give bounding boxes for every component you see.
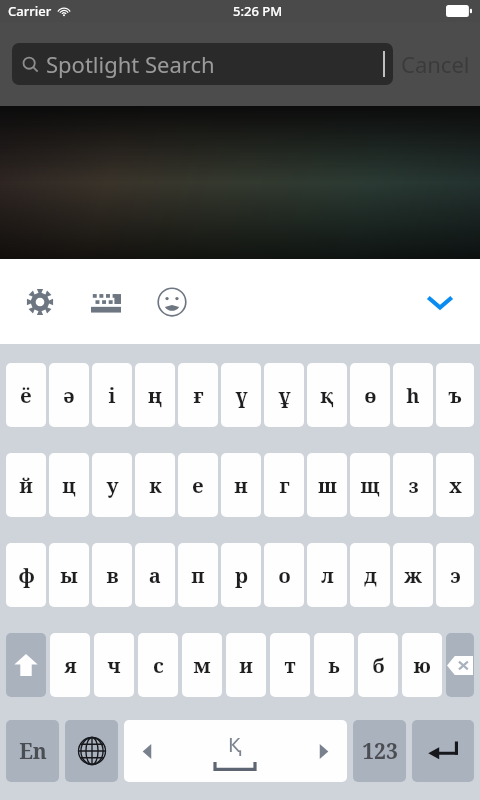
- button[interactable]: ч: [94, 633, 134, 697]
- button[interactable]: л: [307, 543, 347, 607]
- staticText: у: [106, 472, 119, 499]
- staticText: б: [372, 652, 385, 679]
- staticText: д: [364, 562, 377, 589]
- staticText: к: [149, 472, 162, 499]
- button[interactable]: й: [6, 453, 46, 517]
- staticText: х: [449, 472, 462, 499]
- button[interactable]: я: [50, 633, 90, 697]
- staticText: ғ: [193, 382, 204, 409]
- staticText: һ: [406, 382, 420, 409]
- button[interactable]: п: [178, 543, 218, 607]
- button[interactable]: г: [264, 453, 304, 517]
- button[interactable]: с: [138, 633, 178, 697]
- staticText: ч: [107, 652, 121, 679]
- button[interactable]: Space: [124, 720, 347, 782]
- button[interactable]: р: [221, 543, 261, 607]
- button[interactable]: ө: [350, 363, 390, 427]
- button[interactable]: э: [436, 543, 474, 607]
- staticText: ъ: [448, 382, 462, 409]
- button[interactable]: Emoji: [150, 280, 194, 324]
- staticText: и: [239, 652, 253, 679]
- button[interactable]: ү: [221, 363, 261, 427]
- button[interactable]: в: [92, 543, 132, 607]
- button[interactable]: т: [270, 633, 310, 697]
- button[interactable]: Cancel: [401, 49, 470, 79]
- staticText: я: [64, 652, 77, 679]
- staticText: ү: [235, 382, 248, 409]
- button[interactable]: Change language: [65, 720, 118, 782]
- staticText: 5:26 PM: [233, 2, 283, 20]
- button[interactable]: б: [358, 633, 398, 697]
- staticText: н: [234, 472, 248, 499]
- button[interactable]: Hide keyboard: [418, 280, 462, 324]
- staticText: р: [235, 562, 248, 589]
- button[interactable]: қ: [307, 363, 347, 427]
- staticText: ф: [18, 562, 35, 589]
- button[interactable]: 123: [353, 720, 406, 782]
- button[interactable]: ғ: [178, 363, 218, 427]
- button[interactable]: х: [436, 453, 474, 517]
- button[interactable]: к: [135, 453, 175, 517]
- button[interactable]: н: [221, 453, 261, 517]
- staticText: қ: [320, 382, 334, 409]
- staticText: Cancel: [401, 49, 470, 79]
- staticText: ь: [328, 652, 340, 679]
- button[interactable]: о: [264, 543, 304, 607]
- staticText: ұ: [278, 382, 291, 409]
- button[interactable]: ң: [135, 363, 175, 427]
- staticText: й: [19, 472, 33, 499]
- staticText: п: [191, 562, 205, 589]
- button[interactable]: щ: [350, 453, 390, 517]
- staticText: і: [108, 382, 116, 409]
- staticText: ы: [60, 562, 78, 589]
- staticText: ё: [20, 382, 32, 409]
- button[interactable]: ь: [314, 633, 354, 697]
- button[interactable]: ы: [49, 543, 89, 607]
- staticText: э: [450, 562, 461, 589]
- button[interactable]: ъ: [436, 363, 474, 427]
- button[interactable]: Keyboard layout: [84, 280, 128, 324]
- button[interactable]: і: [92, 363, 132, 427]
- staticText: щ: [360, 472, 380, 499]
- staticText: En: [19, 737, 47, 766]
- staticText: т: [284, 652, 296, 679]
- staticText: ң: [148, 382, 162, 409]
- button[interactable]: ш: [307, 453, 347, 517]
- button[interactable]: Settings: [18, 280, 62, 324]
- button[interactable]: м: [182, 633, 222, 697]
- button[interactable]: Return: [412, 720, 474, 782]
- button[interactable]: ю: [402, 633, 442, 697]
- staticText: ө: [364, 382, 377, 409]
- button[interactable]: ц: [49, 453, 89, 517]
- button[interactable]: ф: [6, 543, 46, 607]
- button[interactable]: д: [350, 543, 390, 607]
- staticText: ш: [318, 472, 337, 499]
- button[interactable]: у: [92, 453, 132, 517]
- staticText: о: [278, 562, 291, 589]
- button[interactable]: Spotlight Search: [12, 43, 393, 85]
- staticText: Carrier: [8, 2, 52, 20]
- button[interactable]: һ: [393, 363, 433, 427]
- button[interactable]: е: [178, 453, 218, 517]
- button[interactable]: En: [6, 720, 59, 782]
- staticText: с: [153, 652, 164, 679]
- staticText: м: [193, 652, 211, 679]
- button[interactable]: и: [226, 633, 266, 697]
- staticText: 123: [362, 737, 398, 766]
- staticText: а: [149, 562, 161, 589]
- button[interactable]: з: [393, 453, 433, 517]
- staticText: з: [408, 472, 419, 499]
- button[interactable]: ә: [49, 363, 89, 427]
- staticText: л: [321, 562, 334, 589]
- staticText: Қ: [228, 731, 242, 758]
- staticText: ю: [413, 652, 431, 679]
- button[interactable]: ұ: [264, 363, 304, 427]
- button[interactable]: Backspace: [446, 633, 474, 697]
- staticText: ж: [404, 562, 422, 589]
- button[interactable]: а: [135, 543, 175, 607]
- staticText: г: [279, 472, 290, 499]
- staticText: в: [106, 562, 119, 589]
- button[interactable]: ё: [6, 363, 46, 427]
- button[interactable]: ж: [393, 543, 433, 607]
- button[interactable]: Shift: [6, 633, 46, 697]
